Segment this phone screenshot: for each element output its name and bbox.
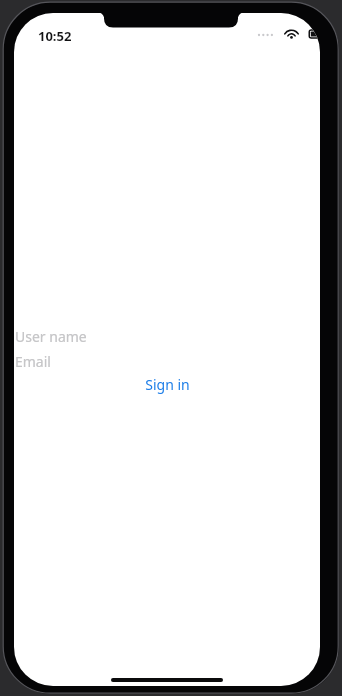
staticText: Email bbox=[15, 352, 51, 371]
staticText: Sign in bbox=[145, 375, 190, 394]
button[interactable]: User name bbox=[14, 326, 134, 346]
button[interactable]: Sign in bbox=[14, 372, 320, 396]
button[interactable]: Email bbox=[14, 351, 134, 371]
staticText: 10:52 bbox=[38, 27, 72, 45]
other: Status icons bbox=[257, 27, 315, 41]
staticText: User name bbox=[15, 327, 87, 346]
